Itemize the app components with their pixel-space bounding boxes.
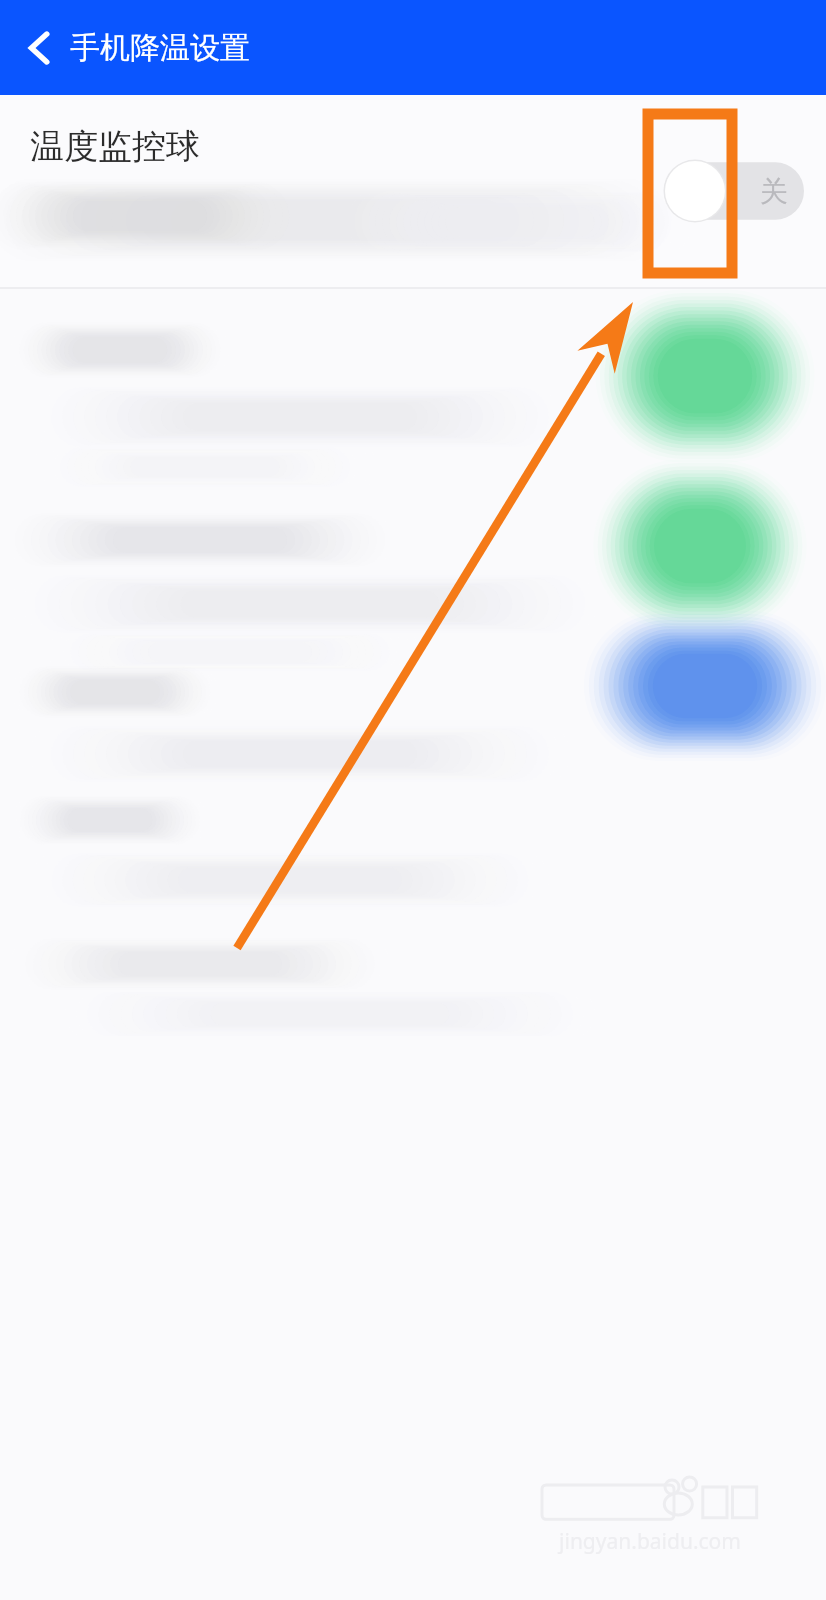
- staticText: jingyan.baidu.com: [559, 1527, 741, 1556]
- staticText: 手机降温设置: [70, 29, 250, 67]
- staticText: 温度监控球: [30, 125, 200, 168]
- button[interactable]: 温度监控球开关: [664, 155, 804, 227]
- staticText: 关: [760, 174, 788, 209]
- button[interactable]: 温度监控球: [0, 95, 826, 287]
- button[interactable]: Back: [8, 19, 66, 77]
